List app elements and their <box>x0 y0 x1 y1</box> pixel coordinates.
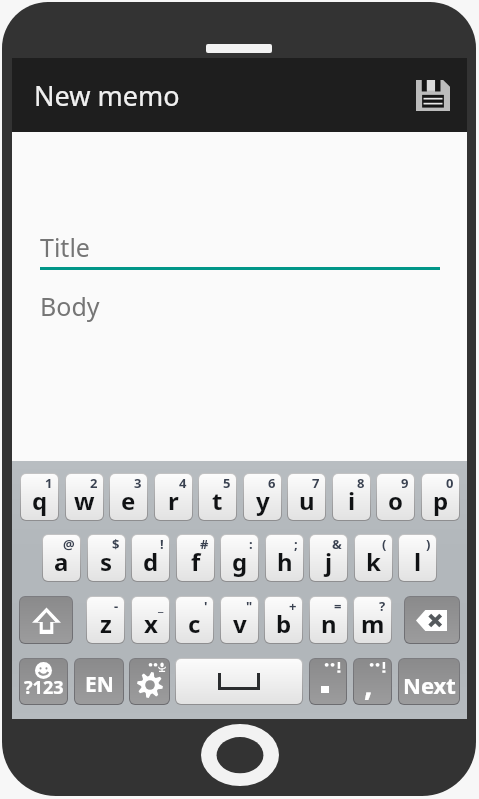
button[interactable]: Next <box>399 659 459 704</box>
button[interactable]: gear <box>130 659 169 704</box>
staticText: = <box>334 597 342 615</box>
button[interactable]: & <box>310 535 347 581</box>
staticText: a <box>54 545 69 578</box>
staticText: b <box>276 607 292 640</box>
button[interactable]: + <box>265 597 302 643</box>
staticText: n <box>321 607 337 640</box>
staticText: e <box>121 484 136 517</box>
staticText: 0 <box>446 474 454 492</box>
button[interactable]: space <box>176 659 302 704</box>
staticText: 2 <box>90 474 98 492</box>
button[interactable]: 1 <box>21 474 58 520</box>
button[interactable]: 7 <box>288 474 325 520</box>
staticText: Next <box>403 670 456 700</box>
button[interactable]: ) <box>399 535 436 581</box>
staticText: 8 <box>357 474 365 492</box>
staticText: w <box>74 484 95 517</box>
staticText: 4 <box>179 474 187 492</box>
staticText: ?123 <box>24 675 64 700</box>
staticText: " <box>246 597 253 615</box>
button[interactable]: 4 <box>155 474 192 520</box>
staticText: , <box>364 664 373 704</box>
staticText: Body <box>40 289 100 323</box>
staticText: 5 <box>223 474 231 492</box>
staticText: 6 <box>268 474 276 492</box>
button[interactable]: 0 <box>422 474 459 520</box>
staticText: ; <box>294 535 298 553</box>
staticText: z <box>100 607 112 640</box>
button[interactable]: 9 <box>377 474 414 520</box>
staticText: y <box>256 484 270 517</box>
button[interactable]: Body <box>40 289 451 323</box>
staticText: & <box>332 535 342 553</box>
button[interactable]: " <box>221 597 258 643</box>
button[interactable]: ; <box>266 535 303 581</box>
button[interactable]: backspace <box>405 597 459 643</box>
staticText: ( <box>382 535 387 553</box>
staticText: _ <box>158 597 164 615</box>
button[interactable]: ' <box>176 597 213 643</box>
button[interactable]: shift <box>20 597 72 643</box>
staticText: 9 <box>401 474 409 492</box>
staticText: 3 <box>134 474 142 492</box>
staticText: 1 <box>45 474 53 492</box>
button[interactable]: - <box>87 597 124 643</box>
staticText: c <box>188 607 201 640</box>
staticText: j <box>325 545 333 578</box>
staticText: Title <box>40 230 90 264</box>
button[interactable]: @ <box>43 535 80 581</box>
button[interactable]: $ <box>88 535 125 581</box>
staticText: f <box>191 545 201 578</box>
button[interactable]: ( <box>355 535 392 581</box>
staticText: $ <box>112 535 120 553</box>
staticText: ' <box>204 597 208 615</box>
button[interactable]: Title <box>40 230 440 270</box>
staticText: # <box>200 535 209 553</box>
staticText: 7 <box>312 474 320 492</box>
staticText: g <box>232 545 248 578</box>
staticText: m <box>361 607 385 640</box>
staticText: t <box>212 484 223 517</box>
button[interactable]: : <box>221 535 258 581</box>
button[interactable]: 6 <box>244 474 281 520</box>
button[interactable]: , <box>354 659 391 704</box>
staticText: l <box>414 545 422 578</box>
button[interactable]: ?123 <box>20 659 67 704</box>
staticText: ? <box>379 597 386 615</box>
button[interactable]: 3 <box>110 474 147 520</box>
staticText: : <box>249 535 253 553</box>
staticText: EN <box>85 670 114 699</box>
button[interactable]: # <box>177 535 214 581</box>
button[interactable]: 5 <box>199 474 236 520</box>
staticText: New memo <box>34 77 180 114</box>
staticText: o <box>388 484 403 517</box>
staticText: ) <box>426 535 431 553</box>
button[interactable]: Save <box>414 76 452 114</box>
staticText: + <box>289 597 297 615</box>
staticText: @ <box>63 535 75 553</box>
staticText: s <box>100 545 113 578</box>
staticText: h <box>277 545 293 578</box>
staticText: - <box>114 597 119 615</box>
button[interactable]: dotkey <box>310 659 346 704</box>
button[interactable]: 8 <box>333 474 370 520</box>
staticText: r <box>168 484 179 517</box>
button[interactable]: _ <box>132 597 169 643</box>
staticText: q <box>32 484 48 517</box>
staticText: k <box>366 545 381 578</box>
staticText: u <box>299 484 315 517</box>
button[interactable]: ? <box>354 597 391 643</box>
button[interactable]: 2 <box>66 474 103 520</box>
button[interactable]: ! <box>132 535 169 581</box>
staticText: i <box>348 484 356 517</box>
button[interactable]: EN <box>75 659 123 704</box>
staticText: ! <box>160 535 164 553</box>
staticText: d <box>143 545 159 578</box>
staticText: v <box>233 607 247 640</box>
staticText: p <box>433 484 449 517</box>
button[interactable]: = <box>310 597 347 643</box>
staticText: x <box>144 607 158 640</box>
